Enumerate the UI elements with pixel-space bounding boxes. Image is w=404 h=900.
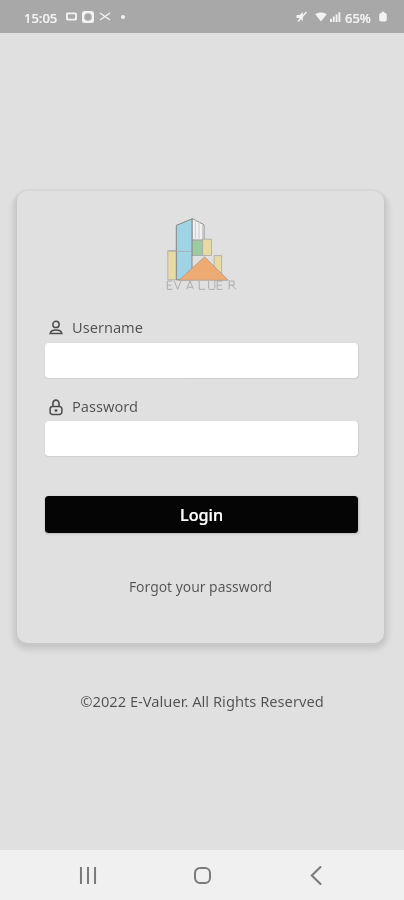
staticText: Login (180, 504, 224, 526)
staticText: 65% (345, 9, 371, 27)
staticText: ©2022 E-Valuer. All Rights Reserved (0, 691, 404, 711)
button[interactable]: Login (45, 496, 358, 533)
staticText: Password (72, 396, 139, 416)
button[interactable]: Forgot your password (17, 577, 384, 596)
button[interactable]: Home (176, 850, 228, 900)
staticText: 15:05 (24, 9, 58, 27)
button[interactable]: Recents (62, 850, 114, 900)
button[interactable]: Back (290, 850, 342, 900)
staticText: Username (72, 317, 143, 337)
